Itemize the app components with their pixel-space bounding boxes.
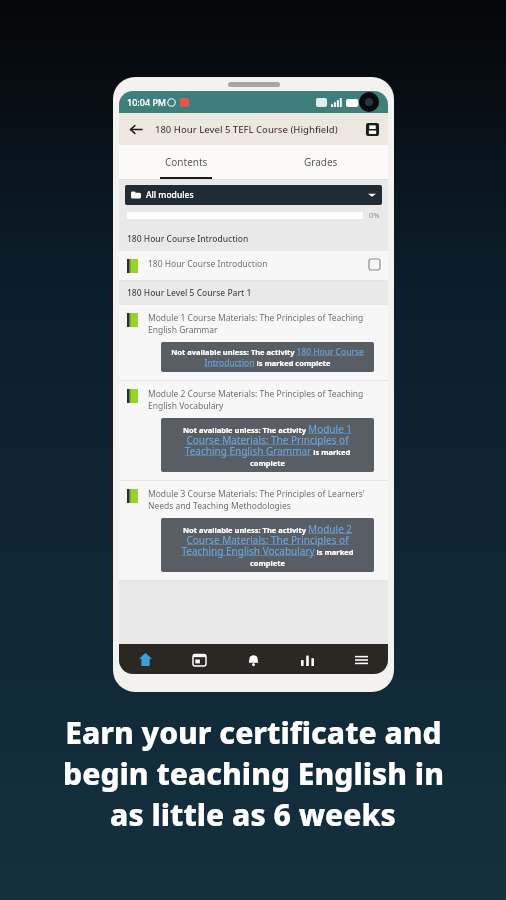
staticText: Module 2 Course Materials: The Principle… [148,388,380,412]
button[interactable]: Calendar [172,644,226,674]
staticText: All modules [146,189,194,201]
staticText: Module 1 Course Materials: The Principle… [148,312,380,336]
staticText: Earn your certificate and [65,712,442,753]
button[interactable]: Back [119,113,151,145]
staticText: as little as 6 weeks [110,794,396,835]
staticText: begin teaching English in [63,753,444,794]
button[interactable]: Module 1 Course Materials: The Principle… [119,305,388,381]
button[interactable]: Menu [334,644,388,674]
staticText: Not available unless: The activity 180 H… [168,346,367,368]
staticText: 180 Hour Course Introduction [148,258,369,270]
button[interactable]: Grades [280,644,334,674]
staticText: 180 Hour Level 5 TEFL Course (Highfield) [155,123,356,136]
staticText: 180 Hour Course Introduction [127,233,249,245]
staticText: Not available unless: The activity Modul… [168,522,367,568]
staticText: Contents [165,155,208,169]
staticText: Not available unless: The activity Modul… [168,422,367,468]
staticText: Grades [304,155,338,169]
button[interactable]: Module 3 Course Materials: The Principle… [119,481,388,581]
staticText: Module 3 Course Materials: The Principle… [148,488,380,512]
button[interactable]: Grades [253,145,388,179]
button[interactable]: Notes [356,113,388,145]
button[interactable]: All modules [125,185,382,205]
button[interactable]: Home [119,644,172,674]
button[interactable]: 180 Hour Course Introduction [119,251,388,281]
staticText: 10:04 PM [127,96,167,108]
button[interactable]: Notifications [226,644,280,674]
button[interactable]: Module 2 Course Materials: The Principle… [119,381,388,481]
staticText: 180 Hour Level 5 Course Part 1 [127,287,252,299]
button[interactable]: Contents [119,145,253,179]
staticText: 0% [369,210,380,220]
